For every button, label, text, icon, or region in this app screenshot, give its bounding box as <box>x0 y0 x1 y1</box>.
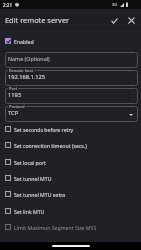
staticText: Set link MTU <box>14 208 45 215</box>
button[interactable]: Set connection timeout (secs.) <box>0 137 141 153</box>
staticText: Set local port <box>14 159 46 166</box>
staticText: Set connection timeout (secs.) <box>14 142 87 149</box>
staticText: Set tunnel MTU extra <box>14 191 66 198</box>
button[interactable]: Name (Optional) <box>5 52 138 68</box>
staticText: Protocol <box>9 104 25 109</box>
staticText: Remote host <box>9 68 33 73</box>
button[interactable]: Limit Maximun Segment Size MSS <box>0 219 141 235</box>
button[interactable]: Set tunnel MTU extra <box>0 186 141 202</box>
staticText: Name (Optional) <box>8 55 50 62</box>
staticText: Set seconds before retry <box>14 126 74 133</box>
staticText: Edit remote server <box>5 15 70 25</box>
button[interactable]: Save <box>106 12 123 29</box>
button[interactable]: Set seconds before retry <box>0 121 141 137</box>
button[interactable]: Protocol <box>5 106 138 122</box>
button[interactable]: Set local port <box>0 154 141 170</box>
staticText: 2:21 <box>3 2 13 8</box>
button[interactable]: Set tunnel MTU <box>0 170 141 186</box>
staticText: Set tunnel MTU <box>14 175 52 182</box>
staticText: 3G <box>112 2 118 7</box>
staticText: Limit Maximun Segment Size MSS <box>14 224 97 231</box>
button[interactable]: Remote host <box>5 70 138 86</box>
button[interactable]: Port <box>5 88 138 104</box>
button[interactable]: Set link MTU <box>0 203 141 219</box>
button[interactable]: Cancel <box>123 12 140 29</box>
staticText: TCP <box>8 109 19 117</box>
staticText: 192.168.1.125 <box>8 73 46 81</box>
button[interactable]: Enabled <box>0 34 141 48</box>
staticText: Enabled <box>14 38 34 45</box>
staticText: Port <box>9 86 17 91</box>
staticText: 1193 <box>8 91 22 99</box>
